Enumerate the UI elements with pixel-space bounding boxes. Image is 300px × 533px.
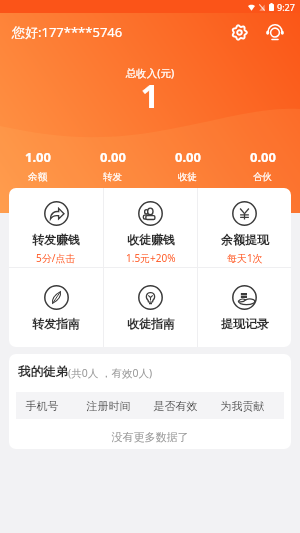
staticText: 我的徒弟 xyxy=(18,364,68,380)
staticText: 总收入(元) xyxy=(0,66,300,80)
staticText: 合伙 xyxy=(253,171,272,183)
staticText: 0.00 xyxy=(250,148,276,166)
staticText: 0.00 xyxy=(100,148,126,166)
staticText: 注册时间 xyxy=(75,399,142,413)
button[interactable]: 余额提现 xyxy=(198,188,291,267)
button[interactable]: 收徒赚钱 xyxy=(104,188,197,267)
staticText: 手机号 xyxy=(9,399,75,413)
staticText: 您好:177****5746 xyxy=(12,23,123,41)
staticText: 5分/点击 xyxy=(36,251,76,265)
staticText: 收徒指南 xyxy=(127,316,175,331)
staticText: 0.00 xyxy=(175,148,201,166)
button[interactable]: 0.00 xyxy=(225,148,300,183)
staticText: 余额提现 xyxy=(221,232,269,247)
staticText: 为我贡献 xyxy=(209,399,276,413)
staticText: 余额 xyxy=(28,171,47,183)
staticText: 1.00 xyxy=(25,148,51,166)
staticText: 没有更多数据了 xyxy=(9,430,291,444)
button[interactable]: 0.00 xyxy=(75,148,150,183)
staticText: 是否有效 xyxy=(142,399,209,413)
button[interactable]: 1.00 xyxy=(0,148,75,183)
button[interactable]: 转发指南 xyxy=(9,268,103,347)
staticText: 收徒 xyxy=(178,171,197,183)
staticText: 转发 xyxy=(103,171,122,183)
staticText: 提现记录 xyxy=(221,316,269,331)
staticText: 1.5元+20% xyxy=(126,251,176,265)
button[interactable]: 设置 xyxy=(226,19,252,45)
staticText: 1 xyxy=(0,74,300,118)
staticText: 收徒赚钱 xyxy=(127,232,175,247)
button[interactable]: 转发赚钱 xyxy=(9,188,103,267)
staticText: 转发指南 xyxy=(32,316,80,331)
button[interactable]: 收徒指南 xyxy=(104,268,197,347)
button[interactable]: 客服 xyxy=(262,19,288,45)
button[interactable]: 提现记录 xyxy=(198,268,291,347)
staticText: 每天1次 xyxy=(227,251,263,265)
button[interactable]: 0.00 xyxy=(150,148,225,183)
staticText: (共0人 ，有效0人) xyxy=(68,366,153,380)
staticText: 转发赚钱 xyxy=(32,232,80,247)
staticText: 9:27 xyxy=(277,1,295,13)
